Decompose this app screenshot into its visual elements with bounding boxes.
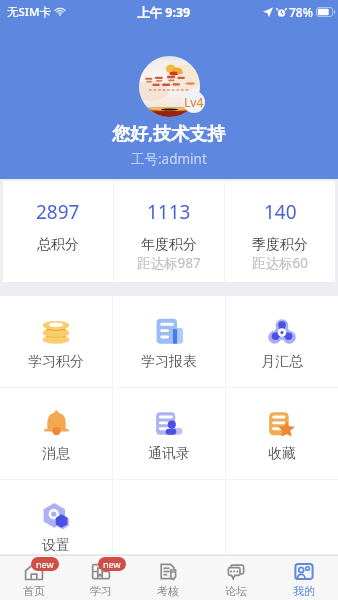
staticText: 距达标987: [137, 254, 201, 272]
staticText: 论坛: [225, 584, 247, 598]
button[interactable]: 我的: [270, 556, 338, 600]
staticText: 您好,技术支持: [112, 121, 226, 146]
staticText: 我的: [293, 584, 315, 598]
staticText: 140: [264, 199, 297, 225]
staticText: 季度积分: [252, 236, 308, 254]
staticText: 1113: [147, 199, 191, 225]
staticText: Lv4: [184, 94, 204, 110]
staticText: 首页: [23, 584, 45, 598]
button[interactable]: new: [67, 556, 134, 600]
staticText: new: [103, 558, 121, 570]
staticText: new: [36, 558, 54, 570]
staticText: 工号:admint: [131, 150, 207, 168]
staticText: 78%: [289, 4, 313, 20]
button[interactable]: 收藏: [226, 388, 338, 479]
button[interactable]: 2897: [3, 181, 113, 282]
staticText: 年度积分: [141, 236, 197, 254]
staticText: 通讯录: [148, 445, 190, 463]
staticText: 距达标60: [252, 254, 308, 272]
staticText: 2897: [36, 199, 80, 225]
button[interactable]: 140: [225, 181, 335, 282]
button[interactable]: 考核: [134, 556, 202, 600]
staticText: 考核: [157, 584, 179, 598]
button[interactable]: new: [0, 556, 67, 600]
staticText: 学习: [90, 584, 112, 598]
staticText: 消息: [42, 445, 70, 463]
button[interactable]: 设置: [0, 480, 112, 554]
button[interactable]: 学习报表: [113, 296, 225, 387]
button[interactable]: 1113: [114, 181, 224, 282]
staticText: 月汇总: [261, 353, 303, 371]
button[interactable]: 学习积分: [0, 296, 112, 387]
staticText: 学习积分: [28, 353, 84, 371]
staticText: 上午 9:39: [137, 4, 191, 21]
staticText: 总积分: [37, 236, 79, 254]
staticText: 无SIM卡: [7, 4, 51, 20]
button[interactable]: 通讯录: [113, 388, 225, 479]
staticText: 设置: [42, 537, 70, 554]
staticText: 收藏: [268, 445, 296, 463]
button[interactable]: 消息: [0, 388, 112, 479]
button[interactable]: 月汇总: [226, 296, 338, 387]
button[interactable]: 论坛: [202, 556, 270, 600]
staticText: 学习报表: [141, 353, 197, 371]
